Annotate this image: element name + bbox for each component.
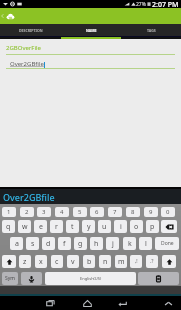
button[interactable]: v — [67, 255, 79, 268]
staticText: 6 — [95, 208, 99, 216]
staticText: 4 — [60, 208, 64, 216]
button[interactable]: x — [35, 255, 47, 268]
button[interactable]: l — [139, 237, 152, 250]
button[interactable]: z — [19, 255, 31, 268]
staticText: 1 — [7, 208, 11, 216]
button[interactable]: 5 — [73, 207, 87, 217]
staticText: j — [112, 239, 114, 249]
staticText: NAME — [86, 28, 97, 33]
staticText: d — [46, 239, 51, 249]
button[interactable]: Recents — [43, 296, 57, 310]
button[interactable]: 2 — [20, 207, 34, 217]
button[interactable]: Backspace — [161, 220, 177, 233]
staticText: 8 — [131, 208, 135, 216]
button[interactable]: m — [115, 255, 127, 268]
button[interactable]: d — [42, 237, 55, 250]
staticText: 3 — [42, 208, 46, 216]
staticText: 7 — [113, 208, 117, 216]
button[interactable]: 9 — [144, 207, 158, 217]
staticText: 2 — [25, 208, 29, 216]
button[interactable]: Done — [155, 237, 179, 250]
staticText: DESCRIPTION — [19, 28, 43, 33]
staticText: a — [15, 239, 19, 249]
button[interactable]: 8 — [126, 207, 140, 217]
button[interactable]: o — [130, 220, 143, 233]
button[interactable]: k — [123, 237, 136, 250]
button[interactable]: English(US) — [45, 272, 136, 285]
button[interactable]: Over2GBfile — [3, 191, 55, 203]
staticText: c — [55, 257, 59, 267]
button[interactable]: Sym — [2, 272, 18, 285]
staticText: English(US) — [80, 276, 102, 281]
button[interactable]: Hide keyboard — [161, 296, 175, 310]
staticText: 2:07 PM — [152, 0, 179, 8]
staticText: q — [6, 222, 11, 232]
staticText: y — [87, 222, 91, 232]
button[interactable]: j — [106, 237, 119, 250]
button[interactable]: Shift — [2, 255, 16, 268]
staticText: u — [102, 222, 107, 232]
staticText: 9 — [149, 208, 153, 216]
button[interactable]: DESCRIPTION — [0, 24, 61, 36]
button[interactable]: h — [90, 237, 103, 250]
staticText: l — [145, 239, 147, 249]
button[interactable]: b — [83, 255, 95, 268]
button[interactable]: TAGS — [121, 24, 181, 36]
staticText: h — [94, 239, 99, 249]
staticText: p — [150, 222, 155, 232]
staticText: Done — [161, 240, 174, 247]
button[interactable]: 0 — [161, 207, 175, 217]
button[interactable]: p — [146, 220, 159, 233]
button[interactable]: f — [58, 237, 71, 250]
button[interactable]: ,! — [130, 255, 142, 268]
button[interactable]: i — [114, 220, 127, 233]
staticText: o — [134, 222, 139, 232]
button[interactable]: e — [34, 220, 47, 233]
staticText: g — [78, 239, 83, 249]
button[interactable]: 1 — [2, 207, 16, 217]
staticText: Over2GBfile — [10, 60, 44, 68]
staticText: 5 — [78, 208, 82, 216]
button[interactable]: 7 — [108, 207, 122, 217]
staticText: s — [31, 239, 35, 249]
button[interactable]: u — [98, 220, 111, 233]
staticText: TAGS — [147, 28, 156, 33]
button[interactable]: NAME — [61, 24, 121, 36]
staticText: 27% — [136, 1, 146, 8]
staticText: w — [22, 222, 28, 232]
button[interactable]: c — [51, 255, 63, 268]
button[interactable]: Back — [115, 296, 129, 310]
staticText: ,! — [135, 258, 138, 265]
button[interactable]: Shift — [162, 255, 176, 268]
button[interactable]: r — [50, 220, 63, 233]
button[interactable]: Navigate up — [0, 8, 4, 24]
staticText: v — [71, 257, 75, 267]
button[interactable]: 6 — [90, 207, 104, 217]
button[interactable]: a — [10, 237, 23, 250]
button[interactable]: y — [82, 220, 95, 233]
staticText: k — [128, 239, 132, 249]
staticText: Sym — [5, 275, 15, 282]
button[interactable]: q — [2, 220, 15, 233]
button[interactable]: s — [26, 237, 39, 250]
button[interactable]: Home — [80, 296, 94, 310]
staticText: x — [39, 257, 43, 267]
staticText: f — [63, 239, 66, 249]
button[interactable]: App logo — [4, 8, 17, 24]
staticText: m — [118, 257, 125, 267]
staticText: r — [55, 222, 58, 232]
staticText: n — [103, 257, 108, 267]
button[interactable]: Enter — [138, 272, 179, 285]
button[interactable]: 3 — [37, 207, 51, 217]
staticText: t — [71, 222, 74, 232]
button[interactable]: t — [66, 220, 79, 233]
button[interactable]: 4 — [55, 207, 69, 217]
button[interactable]: n — [99, 255, 111, 268]
staticText: z — [23, 257, 27, 267]
button[interactable]: Voice input — [21, 272, 42, 285]
staticText: b — [87, 257, 92, 267]
button[interactable]: w — [18, 220, 31, 233]
button[interactable]: g — [74, 237, 87, 250]
button[interactable]: .? — [146, 255, 158, 268]
staticText: e — [39, 222, 43, 232]
